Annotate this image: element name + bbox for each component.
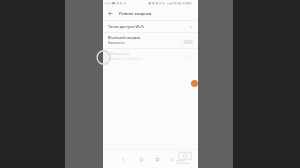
button[interactable]: Home	[135, 153, 147, 165]
button[interactable]: USB-модем	[103, 48, 198, 64]
staticText: Подключите USB-кабель	[108, 57, 143, 61]
staticText: Bluetooth-модем	[108, 35, 140, 40]
button[interactable]: Screen recorder	[191, 80, 198, 87]
button[interactable]: Menu	[165, 153, 177, 165]
button[interactable]: Bluetooth-модем	[103, 32, 198, 48]
button[interactable]: Точка доступа Wi-Fi	[103, 20, 198, 33]
button[interactable]	[180, 40, 193, 44]
button[interactable]: Recent apps	[151, 153, 163, 165]
staticText: Режим модема	[119, 10, 152, 16]
button[interactable]: Back	[117, 153, 129, 165]
button[interactable]: Recorder controls	[174, 150, 194, 166]
button[interactable]: Back	[105, 8, 116, 19]
staticText: Выключено	[108, 41, 125, 45]
staticText: USB-модем	[108, 51, 130, 56]
staticText: Точка доступа Wi-Fi	[108, 24, 145, 29]
